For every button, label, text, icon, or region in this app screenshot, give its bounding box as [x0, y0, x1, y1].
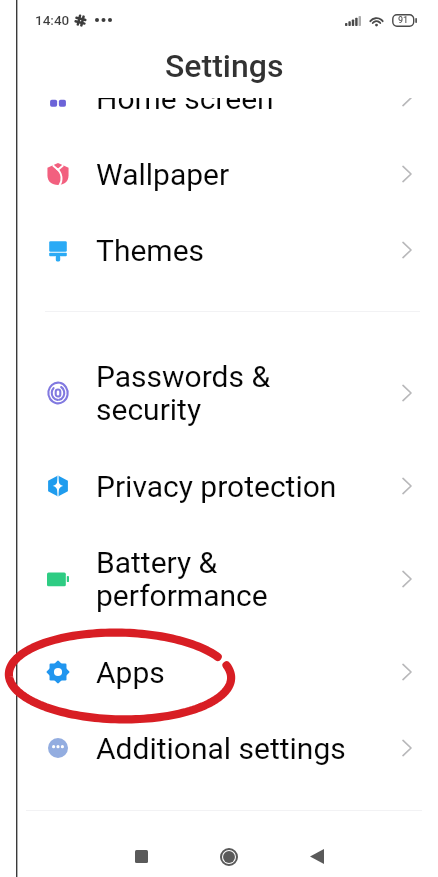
button[interactable]: Recent apps [114, 836, 168, 877]
button[interactable]: Back [290, 836, 344, 877]
button[interactable]: Home [202, 836, 256, 877]
button[interactable]: Passwords & security [0, 338, 438, 448]
staticText: Privacy protection [96, 469, 337, 504]
staticText: Battery & performance [96, 545, 268, 613]
staticText: 14:40 [35, 12, 70, 28]
button[interactable]: Apps [0, 634, 438, 710]
button[interactable]: Themes [0, 212, 438, 288]
staticText: Additional settings [96, 731, 346, 766]
staticText: 91 [398, 15, 409, 26]
staticText: Passwords & security [96, 359, 271, 427]
staticText: Home screen [96, 98, 274, 116]
button[interactable]: Privacy protection [0, 448, 438, 524]
button[interactable]: Wallpaper [0, 136, 438, 212]
button[interactable]: Additional settings [0, 710, 438, 786]
staticText: Themes [96, 233, 205, 268]
button[interactable]: Battery & performance [0, 524, 438, 634]
button[interactable]: Home screen [0, 98, 438, 136]
staticText: Wallpaper [96, 157, 230, 192]
staticText: Apps [96, 655, 165, 690]
staticText: Settings [165, 47, 284, 85]
